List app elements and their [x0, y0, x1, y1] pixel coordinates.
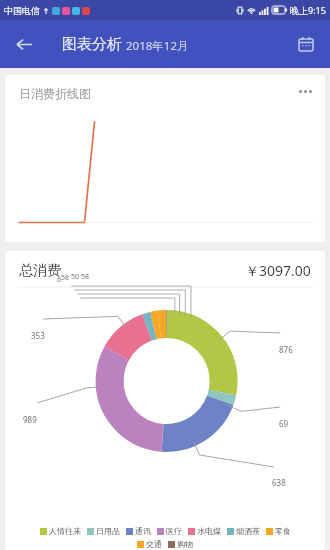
button[interactable]: 日用品 — [86, 526, 121, 536]
staticText: 876 — [279, 344, 293, 355]
button[interactable]: 烟酒茶 — [226, 526, 261, 536]
staticText: 353 — [31, 330, 45, 341]
staticText: 50 — [71, 272, 80, 282]
button[interactable]: 医疗 — [156, 526, 183, 536]
button[interactable]: 日消费折线图 — [5, 75, 325, 242]
staticText: 零食 — [275, 526, 291, 536]
button[interactable]: Select month — [288, 26, 324, 62]
staticText: 日用品 — [96, 526, 120, 536]
staticText: 水电煤 — [197, 526, 221, 536]
staticText: 晚上9:15 — [290, 4, 326, 16]
staticText: 6 — [57, 275, 62, 285]
button[interactable]: 水电煤 — [187, 526, 222, 536]
staticText: 医疗 — [166, 526, 182, 536]
button[interactable]: Back — [6, 26, 42, 62]
staticText: 烟酒茶 — [236, 526, 260, 536]
staticText: 58 — [81, 272, 90, 282]
staticText: 购物 — [177, 539, 193, 549]
staticText: 日消费折线图 — [19, 86, 91, 101]
button[interactable]: 购物 — [167, 539, 194, 549]
staticText: 总消费 — [19, 262, 61, 280]
button[interactable]: 交通 — [136, 539, 163, 549]
staticText: 图表分析 — [62, 35, 122, 54]
staticText: 2018年12月 — [126, 38, 189, 54]
staticText: 中国电信 — [4, 5, 40, 16]
button[interactable]: 总消费 — [5, 251, 325, 550]
staticText: 989 — [23, 414, 37, 425]
staticText: 638 — [272, 477, 286, 488]
button[interactable]: 零食 — [265, 526, 292, 536]
staticText: ￥3097.00 — [245, 261, 311, 280]
button[interactable]: 通讯 — [125, 526, 152, 536]
staticText: 58 — [61, 273, 70, 283]
button[interactable]: More options — [294, 85, 317, 98]
staticText: 通讯 — [135, 526, 151, 536]
staticText: 69 — [279, 418, 289, 429]
button[interactable]: 人情往来 — [39, 526, 82, 536]
staticText: 交通 — [146, 539, 162, 549]
staticText: 人情往来 — [49, 526, 81, 536]
